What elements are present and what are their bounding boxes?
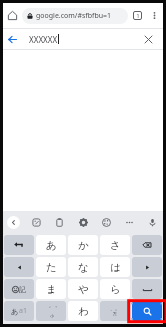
button[interactable]: さ bbox=[100, 235, 130, 255]
button[interactable]: Tabs, 1 open bbox=[128, 3, 146, 28]
button[interactable]: わ bbox=[68, 301, 98, 321]
button[interactable]: Cursor right bbox=[132, 257, 162, 277]
button[interactable]: Themes bbox=[97, 213, 116, 232]
button[interactable]: ま bbox=[36, 279, 66, 299]
button[interactable]: Back bbox=[3, 29, 22, 49]
button[interactable]: Clipboard bbox=[50, 213, 69, 232]
button[interactable]: Expand toolbar bbox=[4, 213, 23, 232]
staticText: ら bbox=[110, 283, 121, 296]
button[interactable]: Space bbox=[132, 279, 162, 299]
staticText: google.com/#sfbfbu=1 bbox=[36, 11, 112, 21]
button[interactable]: あ bbox=[36, 235, 66, 255]
button[interactable]: た bbox=[36, 257, 66, 277]
staticText: a1 bbox=[19, 306, 27, 316]
staticText: や bbox=[78, 283, 89, 296]
staticText: 1 bbox=[136, 12, 140, 20]
staticText: 、。 bbox=[110, 305, 120, 311]
button[interactable]: Undo bbox=[4, 235, 34, 255]
staticText: た bbox=[46, 261, 57, 274]
button[interactable]: か bbox=[68, 235, 98, 255]
button[interactable]: や bbox=[68, 279, 98, 299]
button[interactable]: Clear bbox=[138, 29, 158, 49]
button[interactable]: ら bbox=[100, 279, 130, 299]
button[interactable]: 記 bbox=[4, 279, 34, 299]
button[interactable]: More bbox=[120, 213, 139, 232]
button[interactable]: Stickers bbox=[27, 213, 46, 232]
button[interactable]: な bbox=[68, 257, 98, 277]
staticText: な bbox=[78, 261, 89, 274]
button[interactable]: あ bbox=[4, 301, 34, 321]
button[interactable]: More options bbox=[146, 3, 163, 28]
staticText: XXXXXX bbox=[29, 34, 58, 45]
staticText: あ bbox=[11, 307, 19, 316]
staticText: 小 bbox=[50, 313, 54, 318]
button[interactable]: Home bbox=[3, 3, 22, 28]
button[interactable]: Search bbox=[132, 301, 162, 321]
staticText: わ bbox=[78, 305, 89, 318]
staticText: 記 bbox=[19, 285, 26, 294]
staticText: か bbox=[78, 239, 89, 252]
button[interactable]: Cursor left bbox=[4, 257, 34, 277]
button[interactable]: Voice input bbox=[143, 213, 162, 232]
staticText: ゛゜ bbox=[45, 305, 58, 313]
staticText: は bbox=[110, 261, 121, 274]
button[interactable]: Settings bbox=[74, 213, 93, 232]
button[interactable]: ゛゜ bbox=[36, 301, 66, 321]
staticText: ?! bbox=[113, 311, 117, 318]
staticText: さ bbox=[110, 239, 121, 252]
button[interactable]: は bbox=[100, 257, 130, 277]
staticText: ま bbox=[46, 283, 57, 296]
button[interactable]: google.com/#sfbfbu=1 bbox=[22, 8, 128, 24]
button[interactable]: 、。 bbox=[100, 301, 130, 321]
staticText: あ bbox=[46, 239, 57, 252]
button[interactable]: Delete bbox=[132, 235, 162, 255]
